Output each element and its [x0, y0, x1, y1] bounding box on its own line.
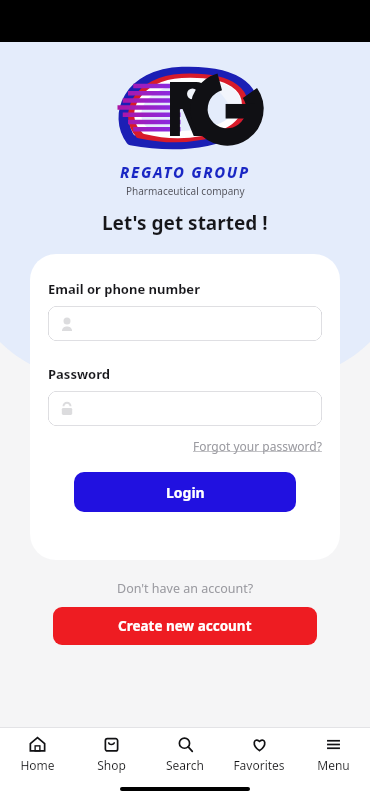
- staticText: Favorites: [233, 757, 285, 773]
- staticText: Shop: [97, 757, 126, 773]
- button[interactable]: Forgot your password?: [193, 436, 322, 456]
- button[interactable]: [48, 306, 322, 341]
- button[interactable]: Menu: [296, 728, 370, 778]
- button[interactable]: [48, 391, 322, 426]
- button[interactable]: Login: [74, 472, 296, 512]
- staticText: Let's get started !: [102, 210, 268, 236]
- staticText: Login: [166, 483, 205, 502]
- staticText: Password: [48, 365, 110, 383]
- staticText: Pharmaceutical company: [126, 184, 245, 198]
- staticText: Email or phone number: [48, 280, 200, 298]
- button[interactable]: Create new account: [53, 607, 317, 645]
- staticText: Menu: [317, 757, 350, 773]
- button[interactable]: Shop: [74, 728, 148, 778]
- staticText: Create new account: [118, 617, 252, 635]
- button[interactable]: Favorites: [222, 728, 296, 778]
- staticText: Home: [20, 757, 55, 773]
- staticText: Search: [166, 757, 204, 773]
- staticText: Don't have an account?: [117, 580, 254, 597]
- button[interactable]: Search: [148, 728, 222, 778]
- staticText: REGATO GROUP: [120, 162, 250, 182]
- button[interactable]: Home: [0, 728, 74, 778]
